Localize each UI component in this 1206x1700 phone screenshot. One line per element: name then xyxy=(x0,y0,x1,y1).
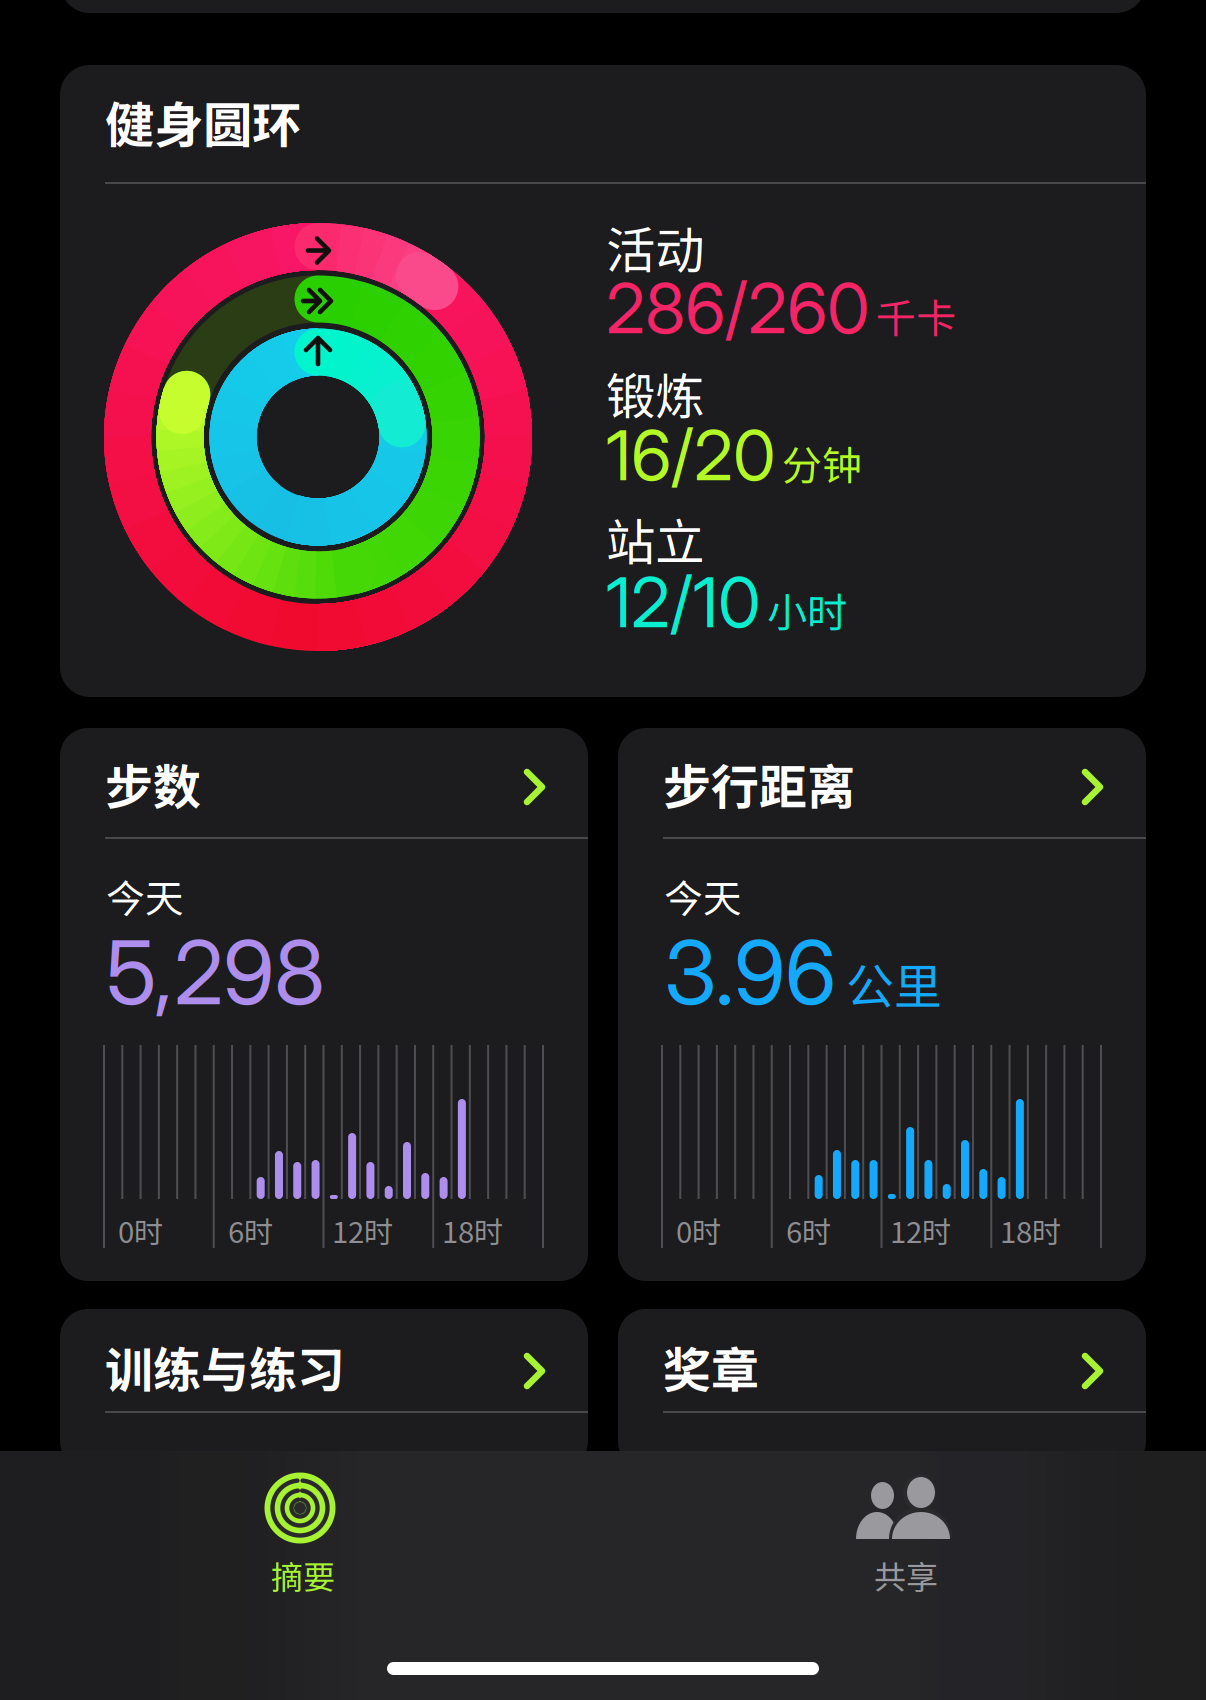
staticText: 0时 xyxy=(676,1209,721,1251)
staticText: 共享 xyxy=(874,1552,938,1598)
staticText: 18时 xyxy=(442,1209,503,1251)
staticText: 训练与练习 xyxy=(105,1332,345,1401)
staticText: 12/10 xyxy=(606,560,761,644)
button[interactable]: 奖章 xyxy=(618,1309,1146,1469)
staticText: 步数 xyxy=(105,749,201,818)
staticText: 6时 xyxy=(228,1209,273,1251)
staticText: 今天 xyxy=(664,868,742,924)
button[interactable]: 摘要 xyxy=(150,1451,450,1606)
staticText: 健身圆环 xyxy=(105,86,301,157)
staticText: 站立 xyxy=(606,503,704,574)
staticText: 步行距离 xyxy=(663,749,855,818)
button[interactable]: 共享 xyxy=(753,1451,1053,1606)
button[interactable]: 步行距离 xyxy=(618,728,1146,1281)
button[interactable]: 训练与练习 xyxy=(60,1309,588,1469)
staticText: 公里 xyxy=(846,949,942,1018)
staticText: 12时 xyxy=(332,1209,393,1251)
staticText: 16/20 xyxy=(606,413,776,497)
staticText: 千卡 xyxy=(876,287,956,345)
staticText: 0时 xyxy=(118,1209,163,1251)
staticText: 分钟 xyxy=(782,434,862,492)
staticText: 小时 xyxy=(767,581,847,639)
staticText: 3.96 xyxy=(664,919,836,1025)
staticText: 今天 xyxy=(106,868,184,924)
staticText: 摘要 xyxy=(271,1552,335,1598)
staticText: 锻炼 xyxy=(606,357,704,428)
staticText: 活动 xyxy=(606,211,704,282)
staticText: 奖章 xyxy=(663,1332,759,1401)
staticText: 286/260 xyxy=(606,266,870,350)
staticText: 12时 xyxy=(890,1209,951,1251)
staticText: 5,298 xyxy=(106,919,325,1025)
button[interactable]: 步数 xyxy=(60,728,588,1281)
staticText: 18时 xyxy=(1000,1209,1061,1251)
staticText: 6时 xyxy=(786,1209,831,1251)
